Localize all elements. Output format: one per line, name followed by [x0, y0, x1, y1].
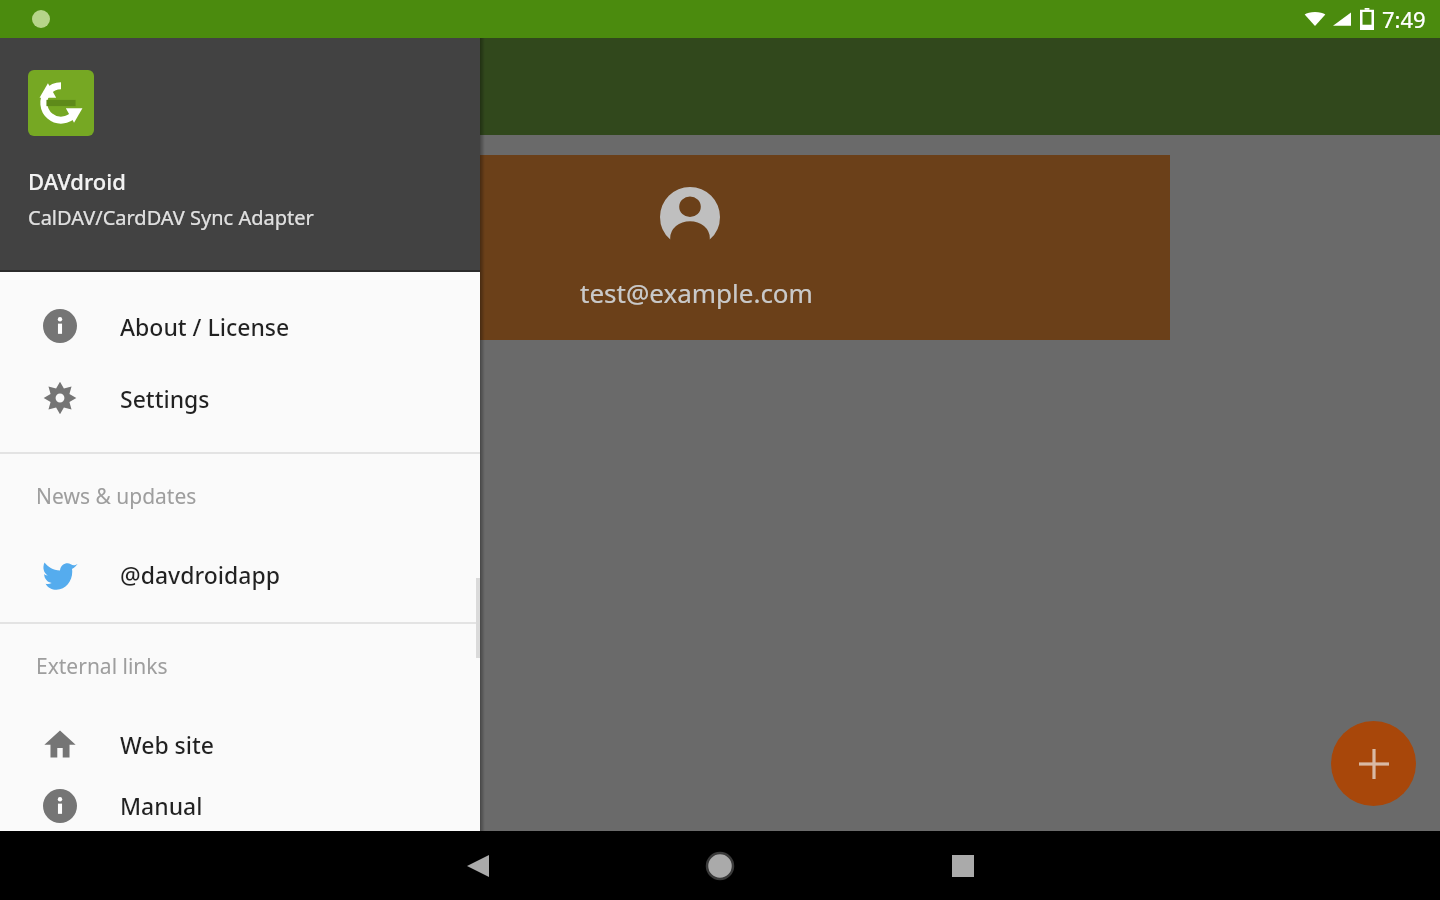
button[interactable]: Manual [0, 780, 480, 831]
staticText: 7:49 [1382, 4, 1426, 34]
button[interactable]: @davdroidapp [0, 538, 480, 610]
button[interactable]: Back [443, 831, 513, 900]
button[interactable]: Recent apps [928, 831, 998, 900]
staticText: Manual [120, 790, 203, 821]
staticText: CalDAV/CardDAV Sync Adapter [28, 204, 314, 231]
staticText: About / License [120, 311, 290, 342]
staticText: @davdroidapp [120, 559, 280, 590]
button[interactable]: test@example.com [370, 155, 1170, 340]
staticText: Settings [120, 383, 210, 414]
staticText: External links [36, 652, 168, 681]
staticText: test@example.com [580, 275, 813, 310]
button[interactable]: Add account [1331, 721, 1416, 806]
button[interactable]: About / License [0, 290, 480, 362]
button[interactable]: Web site [0, 708, 480, 780]
button[interactable]: Settings [0, 362, 480, 434]
staticText: News & updates [36, 482, 197, 511]
button[interactable]: Home [685, 831, 755, 900]
staticText: Web site [120, 729, 215, 760]
staticText: DAVdroid [28, 166, 126, 196]
